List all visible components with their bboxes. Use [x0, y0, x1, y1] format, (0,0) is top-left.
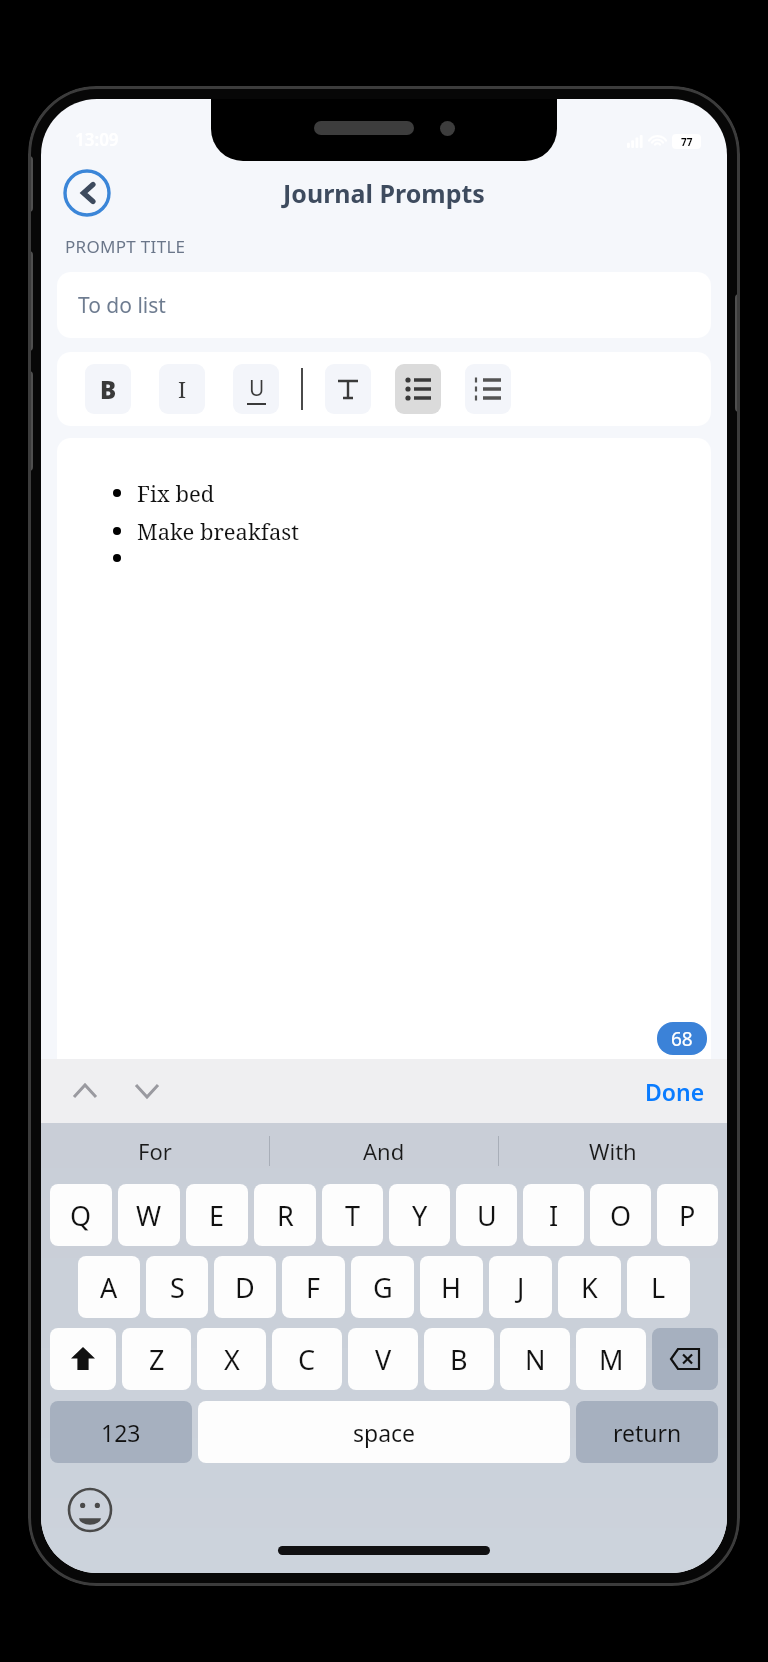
staticText: C — [298, 1341, 316, 1378]
staticText: return — [613, 1417, 682, 1448]
button[interactable] — [325, 364, 371, 414]
button[interactable]: U — [456, 1184, 517, 1246]
button[interactable]: B — [85, 364, 131, 414]
button[interactable]: With — [499, 1123, 727, 1179]
button[interactable]: I — [523, 1184, 584, 1246]
button[interactable]: 123 — [50, 1401, 192, 1463]
button[interactable]: Fix bed — [57, 438, 711, 1059]
staticText: Make breakfast — [137, 516, 300, 546]
button[interactable]: A — [78, 1256, 140, 1318]
button[interactable]: Emoji — [67, 1487, 113, 1533]
staticText: Y — [412, 1197, 428, 1234]
staticText: U — [477, 1197, 497, 1234]
button[interactable]: Y — [389, 1184, 450, 1246]
staticText: Z — [149, 1341, 165, 1378]
staticText: U — [249, 374, 265, 403]
staticText: I — [549, 1197, 559, 1234]
button[interactable]: Backspace — [652, 1328, 718, 1390]
staticText: X — [224, 1341, 240, 1378]
staticText: 68 — [671, 1026, 693, 1052]
staticText: I — [178, 374, 187, 404]
staticText: B — [100, 373, 117, 406]
button[interactable]: And — [270, 1123, 498, 1179]
button[interactable]: L — [627, 1256, 690, 1318]
button[interactable]: O — [590, 1184, 651, 1246]
button[interactable]: V — [348, 1328, 418, 1390]
button[interactable]: E — [186, 1184, 248, 1246]
staticText: S — [170, 1269, 185, 1306]
staticText: space — [353, 1417, 416, 1448]
button[interactable]: For — [41, 1123, 269, 1179]
staticText: Done — [645, 1076, 705, 1107]
button[interactable]: return — [576, 1401, 718, 1463]
staticText: F — [306, 1269, 321, 1306]
button[interactable]: G — [351, 1256, 414, 1318]
button[interactable]: J — [489, 1256, 552, 1318]
button[interactable]: C — [272, 1328, 342, 1390]
staticText: For — [138, 1136, 172, 1166]
button[interactable]: N — [500, 1328, 570, 1390]
staticText: 123 — [101, 1417, 141, 1448]
button[interactable]: S — [146, 1256, 208, 1318]
button[interactable]: M — [576, 1328, 646, 1390]
button[interactable]: U — [233, 364, 279, 414]
button[interactable]: W — [118, 1184, 180, 1246]
staticText: D — [235, 1269, 255, 1306]
staticText: M — [599, 1341, 624, 1378]
staticText: V — [375, 1341, 392, 1378]
button[interactable]: Z — [122, 1328, 191, 1390]
staticText: G — [373, 1269, 393, 1306]
staticText: With — [589, 1136, 637, 1166]
button[interactable]: To do list — [57, 272, 711, 338]
staticText: A — [100, 1269, 118, 1306]
staticText: PROMPT TITLE — [65, 235, 186, 258]
button[interactable]: Previous — [63, 1069, 107, 1113]
staticText: Journal Prompts — [283, 176, 485, 210]
button[interactable]: I — [159, 364, 205, 414]
staticText: B — [450, 1341, 468, 1378]
staticText: H — [441, 1269, 462, 1306]
staticText: T — [345, 1197, 361, 1234]
staticText: J — [517, 1269, 525, 1306]
staticText: Fix bed — [137, 478, 215, 508]
button[interactable]: R — [254, 1184, 316, 1246]
button[interactable]: D — [214, 1256, 276, 1318]
staticText: P — [679, 1197, 696, 1234]
button[interactable]: Next — [125, 1069, 169, 1113]
staticText: N — [525, 1341, 546, 1378]
button[interactable]: B — [424, 1328, 494, 1390]
staticText: To do list — [78, 291, 166, 320]
staticText: E — [209, 1197, 225, 1234]
button[interactable]: X — [197, 1328, 266, 1390]
button[interactable]: K — [558, 1256, 621, 1318]
staticText: 77 — [681, 135, 693, 149]
button[interactable] — [465, 364, 511, 414]
staticText: And — [363, 1136, 405, 1166]
staticText: W — [136, 1197, 162, 1234]
staticText: L — [651, 1269, 666, 1306]
staticText: 13:09 — [75, 128, 119, 151]
button[interactable]: F — [282, 1256, 345, 1318]
button[interactable] — [395, 364, 441, 414]
button[interactable]: Q — [50, 1184, 112, 1246]
button[interactable]: H — [420, 1256, 483, 1318]
button[interactable]: Done — [623, 1066, 727, 1117]
staticText: R — [277, 1197, 294, 1234]
button[interactable]: Shift — [50, 1328, 116, 1390]
staticText: K — [581, 1269, 598, 1306]
button[interactable]: P — [657, 1184, 718, 1246]
button[interactable]: Back — [63, 169, 111, 217]
staticText: O — [610, 1197, 632, 1234]
button[interactable]: T — [322, 1184, 383, 1246]
button[interactable]: space — [198, 1401, 570, 1463]
staticText: Q — [70, 1197, 92, 1234]
